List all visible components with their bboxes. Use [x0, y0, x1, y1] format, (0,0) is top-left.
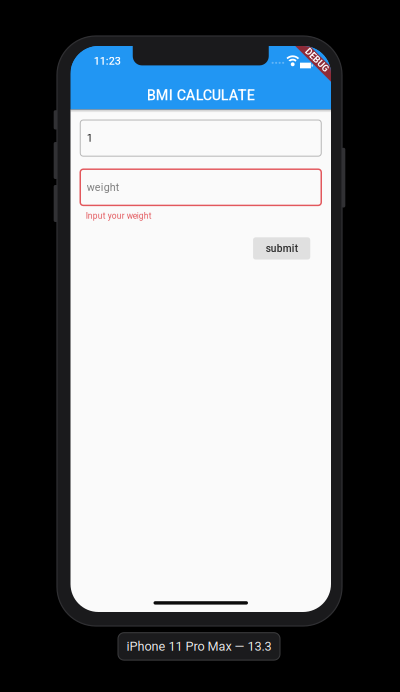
button[interactable]: submit — [253, 237, 310, 259]
staticText: BMI CALCULATE — [147, 87, 255, 104]
staticText: 11:23 — [94, 55, 121, 67]
button[interactable]: weight — [80, 169, 321, 205]
staticText: iPhone 11 Pro Max — 13.3 — [126, 639, 271, 654]
button[interactable]: 1 — [80, 120, 321, 156]
staticText: weight — [87, 181, 119, 193]
staticText: 1 — [87, 132, 93, 144]
staticText: Input your weight — [86, 211, 152, 221]
staticText: DEBUG — [302, 55, 331, 65]
staticText: submit — [266, 242, 298, 254]
